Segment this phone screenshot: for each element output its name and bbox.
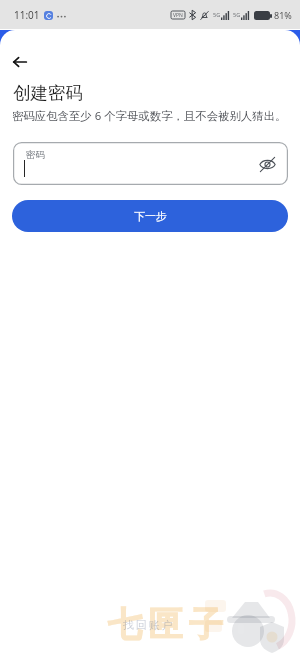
button[interactable]: Back: [5, 47, 34, 76]
staticText: 5G: [213, 11, 221, 18]
staticText: 11:01: [14, 8, 40, 22]
staticText: VPN: [173, 12, 183, 19]
staticText: 5G: [233, 11, 241, 18]
staticText: 密码应包含至少 6 个字母或数字，且不会被别人猜出。: [12, 108, 287, 124]
button[interactable]: 下一步: [12, 200, 288, 232]
staticText: 创建密码: [13, 82, 83, 104]
button[interactable]: 密码: [13, 142, 288, 185]
staticText: 七匣子: [108, 603, 230, 646]
staticText: 下一步: [134, 209, 167, 223]
staticText: 找回账户: [123, 618, 175, 632]
staticText: 密码: [26, 149, 45, 161]
button[interactable]: Show password: [256, 153, 278, 175]
staticText: 81%: [274, 9, 292, 21]
